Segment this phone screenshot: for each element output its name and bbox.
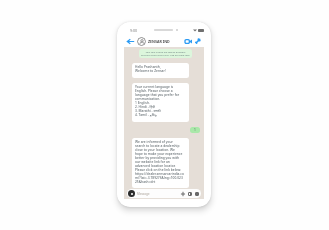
staticText: 9:00: [130, 28, 138, 33]
button[interactable]: Back: [126, 37, 134, 45]
staticText: Hello Prashanth, Welcome to Zensar!: [135, 65, 166, 73]
staticText: We are informed of your search to locate…: [135, 140, 184, 183]
staticText: Message: [137, 192, 150, 196]
staticText: This chat is with the official business …: [141, 50, 190, 57]
button[interactable]: Attach: [180, 191, 185, 196]
button[interactable]: Call: [194, 37, 202, 45]
staticText: Your current language is English. Please…: [135, 85, 180, 117]
button[interactable]: Emoji: [128, 190, 135, 197]
staticText: ZENSAR IND: [148, 39, 170, 44]
button[interactable]: Camera: [194, 191, 199, 196]
button[interactable]: Video call: [184, 37, 192, 45]
button[interactable]: Gallery: [187, 191, 192, 196]
staticText: 1: [194, 128, 196, 132]
